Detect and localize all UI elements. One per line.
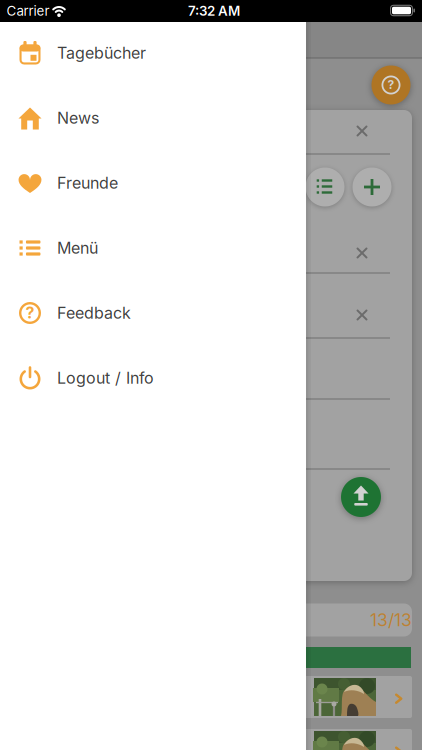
button[interactable] (10, 676, 412, 718)
button[interactable]: ? (0, 281, 306, 345)
staticText: Logout / Info (57, 369, 154, 387)
button[interactable]: News (0, 86, 306, 150)
button[interactable] (10, 729, 412, 750)
button[interactable]: Freunde (0, 151, 306, 215)
staticText: News (57, 109, 99, 127)
button[interactable]: Tagebücher (0, 21, 306, 85)
staticText: Carrier (6, 3, 49, 19)
staticText: Menü (57, 239, 98, 257)
button[interactable]: Liste (305, 167, 344, 206)
button[interactable]: Hilfe (371, 65, 410, 104)
button[interactable]: Menü (0, 216, 306, 280)
staticText: Feedback (57, 304, 131, 322)
button[interactable]: Löschen (350, 241, 374, 265)
staticText: 13/13 (370, 610, 412, 630)
staticText: Freunde (57, 174, 118, 192)
button[interactable]: Hinzufügen (352, 167, 391, 206)
staticText: ? (387, 78, 394, 92)
staticText: Tagebücher (57, 44, 146, 62)
staticText: 7:32 AM (188, 3, 240, 19)
button[interactable]: Löschen (350, 303, 374, 327)
button[interactable]: Löschen (350, 119, 374, 143)
staticText: ? (25, 303, 34, 322)
button[interactable]: Logout / Info (0, 346, 306, 410)
button[interactable]: Hochladen (341, 477, 381, 517)
